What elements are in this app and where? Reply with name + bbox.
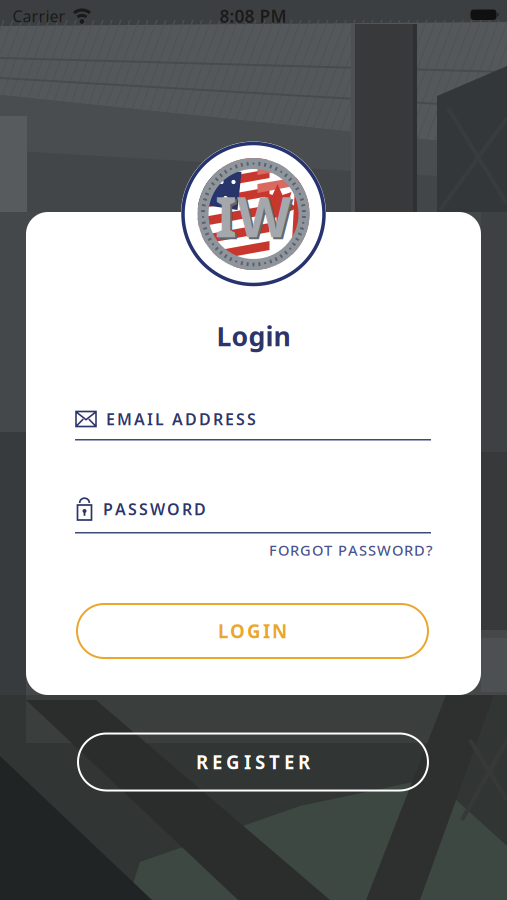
staticText: Login <box>216 318 290 354</box>
button[interactable]: Password <box>75 484 431 535</box>
staticText: R E G I S T E R <box>196 750 310 774</box>
staticText: E M A I L A D D R E S S <box>106 408 256 430</box>
button[interactable]: R E G I S T E R <box>78 733 428 790</box>
staticText: F O R G O T P A S S W O R D ? <box>269 540 433 560</box>
staticText: 8:08 PM <box>219 4 286 27</box>
staticText: IW <box>217 180 293 255</box>
staticText: Carrier <box>12 5 65 27</box>
staticText: IW <box>215 178 291 253</box>
staticText: L O G I N <box>218 619 287 643</box>
staticText: P A S S W O R D <box>103 498 206 520</box>
button[interactable]: Email address <box>75 398 431 442</box>
button[interactable]: L O G I N <box>77 604 428 658</box>
button[interactable]: F O R G O T P A S S W O R D ? <box>269 540 433 560</box>
